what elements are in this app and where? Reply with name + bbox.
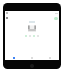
button[interactable]: Add — [54, 17, 58, 20]
button[interactable]: Home — [5, 56, 23, 59]
button[interactable]: Search — [23, 56, 41, 59]
button[interactable]: Profile — [41, 56, 59, 59]
